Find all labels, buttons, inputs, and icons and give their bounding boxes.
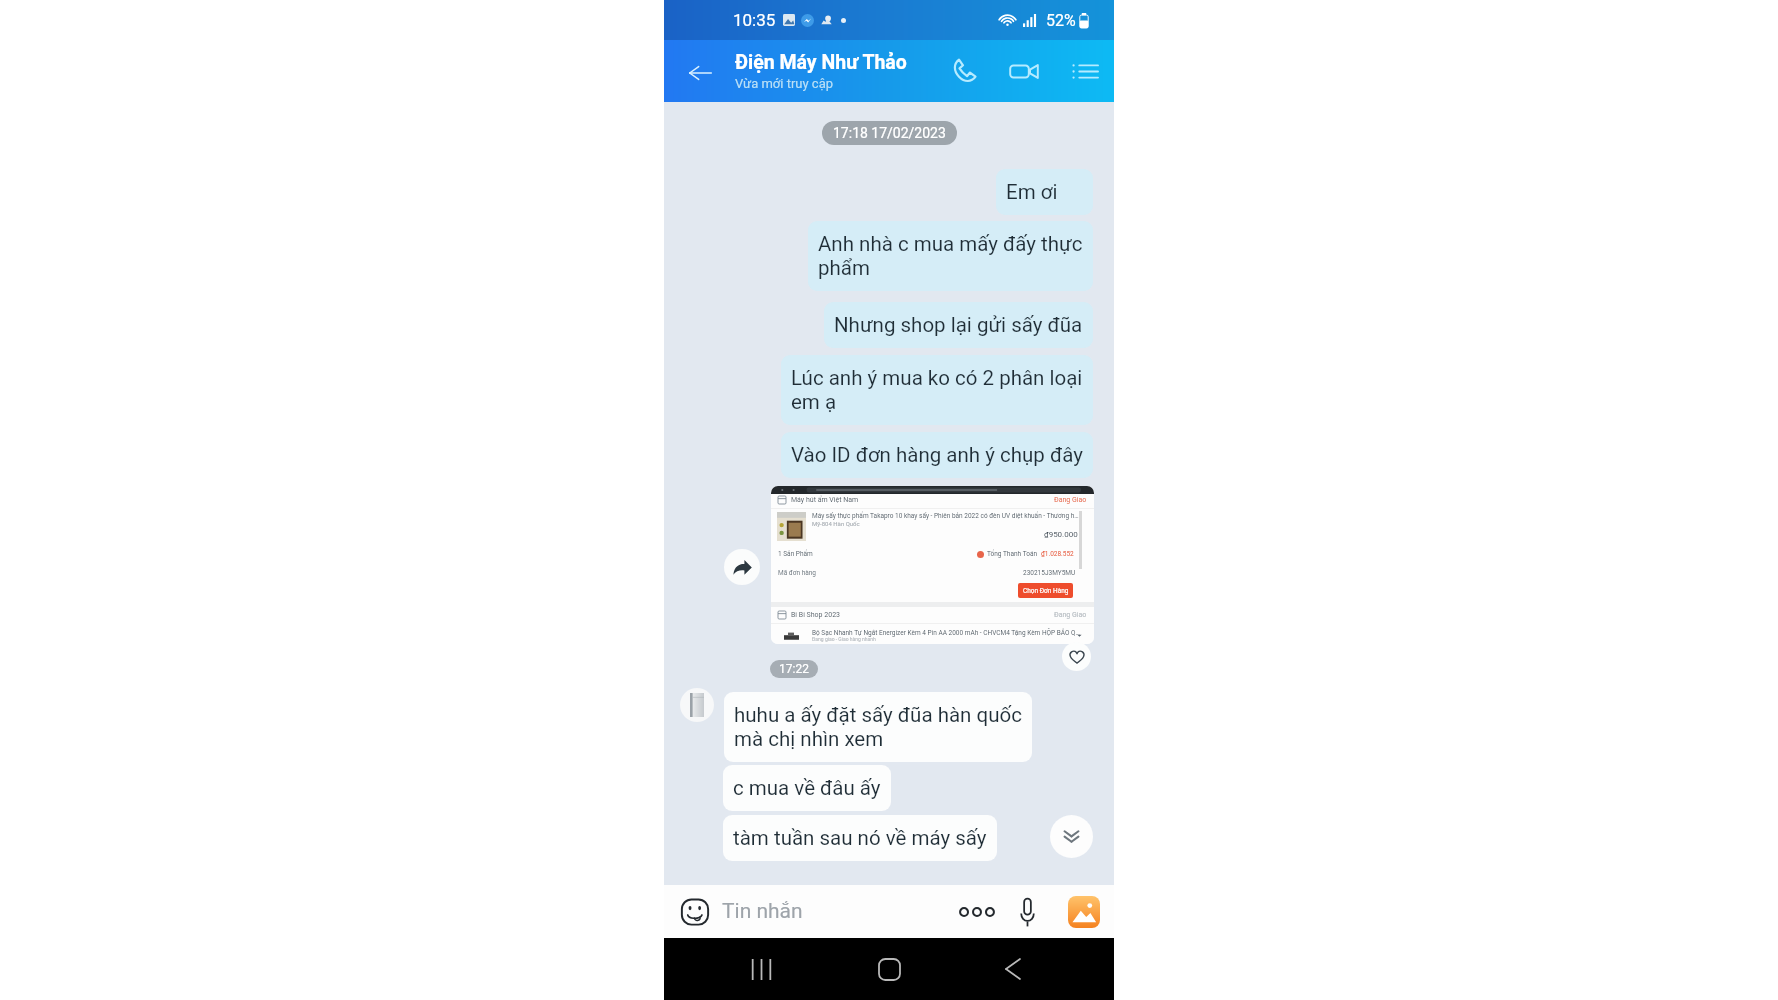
button[interactable]: Em ơi bbox=[996, 169, 1093, 215]
staticText: Em ơi bbox=[1006, 180, 1058, 204]
staticText: Máy hút ẩm Việt Nam bbox=[791, 496, 859, 504]
button[interactable]: Send image bbox=[1063, 885, 1105, 938]
button[interactable]: Anh nhà c mua mấy đấy thực phẩm bbox=[808, 221, 1093, 291]
staticText: Bộ Sạc Nhanh Tự Ngắt Energizer Kèm 4 Pin… bbox=[812, 629, 1080, 637]
staticText: Vừa mới truy cập bbox=[735, 76, 834, 91]
staticText: Mỹ-804 Hàn Quốc bbox=[812, 520, 860, 527]
staticText: 52% bbox=[1046, 11, 1076, 30]
button[interactable]: c mua về đâu ấy bbox=[723, 765, 891, 811]
staticText: Đang Giao bbox=[1054, 496, 1087, 504]
button[interactable]: Vào ID đơn hàng anh ý chụp đây bbox=[781, 432, 1093, 478]
staticText: Chọn Đơn Hàng bbox=[1023, 587, 1069, 595]
staticText: Bi Bi Shop 2023 bbox=[791, 611, 841, 619]
staticText: Tổng Thanh Toán bbox=[987, 550, 1038, 558]
staticText: Đang Giao bbox=[1054, 611, 1087, 619]
staticText: 17:22 bbox=[779, 662, 809, 676]
staticText: 10:35 bbox=[733, 10, 776, 30]
button[interactable]: Lúc anh ý mua ko có 2 phân loại em ạ bbox=[781, 355, 1093, 425]
button[interactable]: Like bbox=[1062, 642, 1091, 671]
button[interactable]: Menu bbox=[1064, 40, 1106, 102]
staticText: ₫950.000 bbox=[1044, 530, 1078, 539]
button[interactable]: Voice message bbox=[1008, 885, 1046, 938]
button[interactable]: Back bbox=[990, 938, 1036, 1000]
staticText: 230215J3MY5MU bbox=[1023, 569, 1076, 577]
button[interactable]: huhu a ấy đặt sấy đũa hàn quốc mà chị nh… bbox=[724, 692, 1032, 762]
button[interactable]: Nhưng shop lại gửi sấy đũa bbox=[824, 302, 1093, 348]
button[interactable]: Home bbox=[866, 938, 912, 1000]
button[interactable]: More options bbox=[955, 885, 999, 938]
button[interactable]: Tin nhắn bbox=[722, 885, 803, 938]
staticText: c mua về đâu ấy bbox=[733, 776, 881, 800]
button[interactable]: 17:22 bbox=[770, 660, 818, 678]
staticText: Đang giao - Giao hàng nhanh bbox=[812, 636, 876, 642]
button[interactable]: Máy hút ẩm Việt Nam bbox=[771, 486, 1094, 644]
staticText: 1 Sản Phẩm bbox=[778, 550, 813, 558]
staticText: Mã đơn hàng bbox=[778, 569, 816, 577]
button[interactable]: Emoji bbox=[677, 885, 713, 938]
button[interactable]: tàm tuần sau nó về máy sấy bbox=[723, 815, 997, 861]
staticText: Máy sấy thực phẩm Takapro 10 khay sấy - … bbox=[812, 512, 1080, 520]
button[interactable]: Video call bbox=[1002, 40, 1046, 102]
button[interactable]: Back bbox=[682, 40, 718, 102]
staticText: Nhưng shop lại gửi sấy đũa bbox=[834, 313, 1083, 337]
button[interactable]: Scroll to bottom bbox=[1050, 815, 1093, 858]
staticText: 17:18 17/02/2023 bbox=[833, 125, 946, 141]
staticText: huhu a ấy đặt sấy đũa hàn quốc mà chị nh… bbox=[734, 703, 1022, 751]
button[interactable]: Recents bbox=[738, 938, 784, 1000]
staticText: Điện Máy Như Thảo bbox=[735, 51, 907, 74]
staticText: Lúc anh ý mua ko có 2 phân loại em ạ bbox=[791, 366, 1083, 414]
staticText: Tin nhắn bbox=[722, 899, 803, 924]
button[interactable]: Call bbox=[942, 40, 986, 102]
button[interactable]: Forward bbox=[724, 549, 760, 585]
staticText: Vào ID đơn hàng anh ý chụp đây bbox=[791, 443, 1083, 467]
button[interactable]: 17:18 17/02/2023 bbox=[822, 121, 957, 145]
staticText: ₫1.028.552 bbox=[1041, 550, 1074, 558]
button[interactable]: Chọn Đơn Hàng bbox=[1018, 583, 1073, 598]
staticText: tàm tuần sau nó về máy sấy bbox=[733, 826, 987, 850]
staticText: Anh nhà c mua mấy đấy thực phẩm bbox=[818, 232, 1083, 280]
